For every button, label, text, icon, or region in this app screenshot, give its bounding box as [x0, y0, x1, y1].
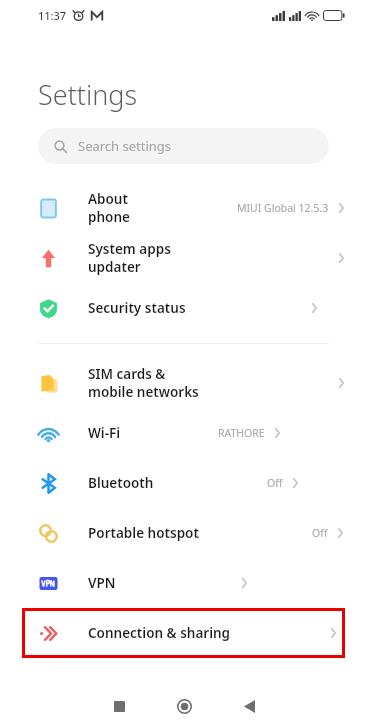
- staticText: SIM cards & mobile networks: [88, 365, 213, 401]
- staticText: RATHORE: [218, 426, 265, 440]
- staticText: 11:37: [38, 8, 67, 23]
- staticText: Security status: [88, 299, 186, 317]
- staticText: System apps updater: [88, 240, 213, 276]
- button[interactable]: Wi-Fi: [0, 408, 367, 458]
- button[interactable]: Recent apps: [96, 687, 142, 725]
- staticText: Settings: [38, 76, 138, 113]
- button[interactable]: About phone: [0, 183, 367, 233]
- button[interactable]: Search settings: [38, 128, 329, 164]
- staticText: Off: [312, 526, 328, 540]
- button[interactable]: System apps updater: [0, 233, 367, 283]
- button[interactable]: Security status: [0, 283, 367, 333]
- staticText: Bluetooth: [88, 474, 154, 492]
- staticText: Wi-Fi: [88, 424, 121, 442]
- button[interactable]: SIM cards & mobile networks: [0, 358, 367, 408]
- button[interactable]: Bluetooth: [0, 458, 367, 508]
- staticText: Off: [267, 476, 283, 490]
- button[interactable]: VPN: [0, 558, 367, 608]
- staticText: Portable hotspot: [88, 524, 199, 542]
- staticText: VPN: [88, 574, 116, 592]
- staticText: Search settings: [78, 137, 172, 155]
- staticText: Connection & sharing: [88, 624, 231, 642]
- button[interactable]: Back: [226, 687, 272, 725]
- staticText: MIUI Global 12.5.3: [237, 201, 329, 215]
- button[interactable]: Home: [161, 687, 207, 725]
- button[interactable]: Connection & sharing: [22, 608, 345, 658]
- button[interactable]: Portable hotspot: [0, 508, 367, 558]
- staticText: About phone: [88, 190, 162, 226]
